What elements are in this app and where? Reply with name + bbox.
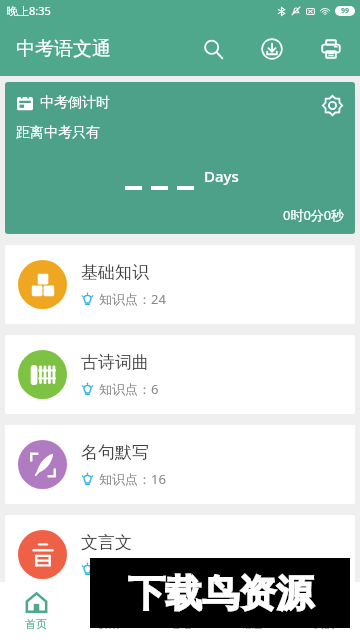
staticText: 中考倒计时 [40,94,110,112]
button[interactable]: Search [198,34,228,64]
staticText: 知识点：24 [99,290,166,308]
button[interactable]: 首页 [0,582,72,640]
staticText: Days [204,166,239,186]
staticText: 文言文 [81,532,132,553]
staticText: 下载鸟资源 [128,570,313,617]
button[interactable]: 收藏 [72,582,144,640]
staticText: 首页 [25,617,47,631]
button[interactable]: 错题 [216,582,288,640]
staticText: 名句默写 [81,442,149,463]
staticText: 基础知识 [81,262,149,283]
staticText: 知识点：16 [99,470,166,488]
button[interactable]: 文言文 [5,515,355,594]
staticText: 知识点：12 [99,560,166,578]
button[interactable]: 中考倒计时 [5,82,355,234]
staticText: 古诗词曲 [81,352,149,373]
button[interactable]: 名句默写 [5,425,355,504]
button[interactable]: Print [316,34,346,64]
staticText: 0时0分0秒 [283,206,345,224]
staticText: 错题 [241,617,263,631]
button[interactable]: Settings [319,92,345,118]
button[interactable]: 我的 [288,582,360,640]
staticText: 收藏 [97,617,119,631]
button[interactable]: 笔记 [144,582,216,640]
staticText: 知识点：6 [99,380,159,398]
staticText: 笔记 [169,617,191,631]
staticText: 中考语文通 [16,37,111,61]
button[interactable]: 基础知识 [5,245,355,324]
staticText: 我的 [313,617,335,631]
staticText: 距离中考只有 [16,124,100,142]
staticText: 晚上8:35 [7,3,51,18]
button[interactable]: Download [257,34,287,64]
staticText: 99 [341,6,350,16]
button[interactable]: 古诗词曲 [5,335,355,414]
